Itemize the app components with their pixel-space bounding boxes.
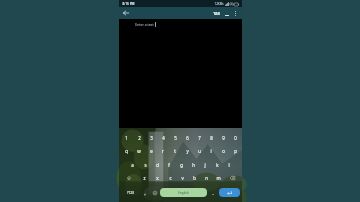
staticText: 5 [174, 135, 177, 141]
button[interactable]: Minimize [222, 9, 231, 18]
button[interactable]: j [199, 159, 211, 171]
staticText: b [193, 175, 196, 181]
staticText: p [234, 148, 237, 154]
button[interactable]: e [145, 145, 157, 157]
button[interactable]: v [176, 172, 188, 184]
staticText: 2 [138, 135, 141, 141]
button[interactable]: o [217, 145, 229, 157]
staticText: e [150, 148, 153, 154]
button[interactable]: h [187, 159, 199, 171]
staticText: o [222, 148, 225, 154]
staticText: j [204, 162, 206, 168]
button[interactable]: 4 [157, 132, 169, 144]
button[interactable]: q [120, 145, 133, 157]
staticText: 1.2KB/s [214, 2, 224, 6]
staticText: l [228, 162, 230, 168]
staticText: i [210, 148, 212, 154]
button[interactable]: English [160, 188, 207, 197]
staticText: n [205, 175, 208, 181]
staticText: s [144, 162, 147, 168]
button[interactable]: More options [231, 9, 240, 18]
button[interactable]: i [205, 145, 217, 157]
button[interactable]: z [138, 172, 151, 184]
staticText: , [144, 190, 146, 196]
button[interactable]: 3 [145, 132, 157, 144]
button[interactable]: ?123 [121, 186, 139, 199]
staticText: 3 [150, 135, 153, 141]
button[interactable]: r [157, 145, 169, 157]
button[interactable]: 6 [181, 132, 193, 144]
staticText: 7 [198, 135, 201, 141]
staticText: h [192, 162, 195, 168]
button[interactable]: l [223, 159, 235, 171]
staticText: d [156, 162, 159, 168]
staticText: 9 [222, 135, 225, 141]
staticText: m [216, 175, 221, 181]
button[interactable]: p [229, 145, 241, 157]
staticText: English [178, 191, 189, 195]
staticText: q [125, 148, 128, 154]
staticText: r [162, 148, 164, 154]
staticText: z [143, 175, 146, 181]
button[interactable]: y [181, 145, 193, 157]
button[interactable]: 1 [120, 132, 133, 144]
button[interactable]: a [126, 159, 139, 171]
button[interactable]: u [193, 145, 205, 157]
button[interactable]: s [139, 159, 151, 171]
button[interactable]: k [211, 159, 223, 171]
button[interactable]: b [188, 172, 200, 184]
button[interactable]: Backspace [224, 172, 241, 184]
staticText: 8 [210, 135, 213, 141]
staticText: k [216, 162, 219, 168]
staticText: g [180, 162, 183, 168]
button[interactable]: 7 [193, 132, 205, 144]
staticText: v [181, 175, 184, 181]
staticText: TAB [213, 11, 220, 16]
staticText: ?123 [127, 191, 134, 195]
staticText: 1 [125, 135, 128, 141]
button[interactable]: Enter [219, 188, 240, 197]
button[interactable]: x [151, 172, 164, 184]
button[interactable]: TAB [211, 8, 222, 18]
staticText: Enter a text [135, 22, 154, 27]
button[interactable]: Back [121, 8, 131, 18]
button[interactable]: Emoji [150, 186, 159, 199]
button[interactable]: m [212, 172, 224, 184]
staticText: 0 [234, 135, 237, 141]
staticText: . [212, 190, 214, 196]
button[interactable]: c [164, 172, 176, 184]
button[interactable]: g [175, 159, 187, 171]
button[interactable]: 8 [205, 132, 217, 144]
button[interactable]: 0 [229, 132, 241, 144]
staticText: a [131, 162, 134, 168]
staticText: f [168, 162, 170, 168]
button[interactable]: d [151, 159, 163, 171]
staticText: 6 [186, 135, 189, 141]
button[interactable]: n [200, 172, 212, 184]
button[interactable]: 5 [169, 132, 181, 144]
button[interactable]: t [169, 145, 181, 157]
staticText: c [169, 175, 172, 181]
button[interactable]: 9 [217, 132, 229, 144]
button[interactable]: 2 [133, 132, 145, 144]
staticText: t [174, 148, 176, 154]
staticText: w [137, 148, 141, 154]
button[interactable]: . [208, 186, 218, 199]
staticText: 4 [162, 135, 165, 141]
staticText: u [198, 148, 201, 154]
staticText: 8:15 PM [122, 2, 135, 6]
staticText: y [186, 148, 189, 154]
button[interactable]: Shift [120, 172, 138, 184]
button[interactable]: , [140, 186, 149, 199]
staticText: x [156, 175, 159, 181]
button[interactable]: f [163, 159, 175, 171]
button[interactable]: w [133, 145, 145, 157]
